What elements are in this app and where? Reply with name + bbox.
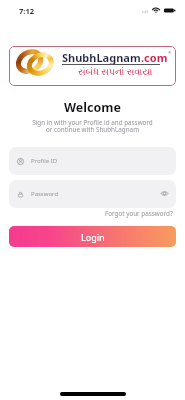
staticText: .com <box>141 50 168 65</box>
staticText: Login <box>81 231 105 243</box>
button[interactable]: Forgot your password? <box>105 209 173 218</box>
staticText: Sign in with your Profile id and passwor… <box>0 118 185 134</box>
button[interactable]: Password <box>9 180 176 208</box>
staticText: ® <box>168 50 172 55</box>
button[interactable]: Show password <box>159 189 170 200</box>
staticText: Forgot your password? <box>105 209 173 218</box>
button[interactable]: Login <box>9 226 176 247</box>
staticText: Profile ID <box>31 157 58 165</box>
button[interactable]: Profile ID <box>9 147 176 175</box>
staticText: ShubhLagnam <box>62 50 141 65</box>
staticText: Password <box>31 190 59 198</box>
staticText: સંબંધ સપનાં સવાયા <box>78 65 153 78</box>
staticText: 7:12 <box>19 6 34 16</box>
staticText: Welcome <box>0 99 185 116</box>
